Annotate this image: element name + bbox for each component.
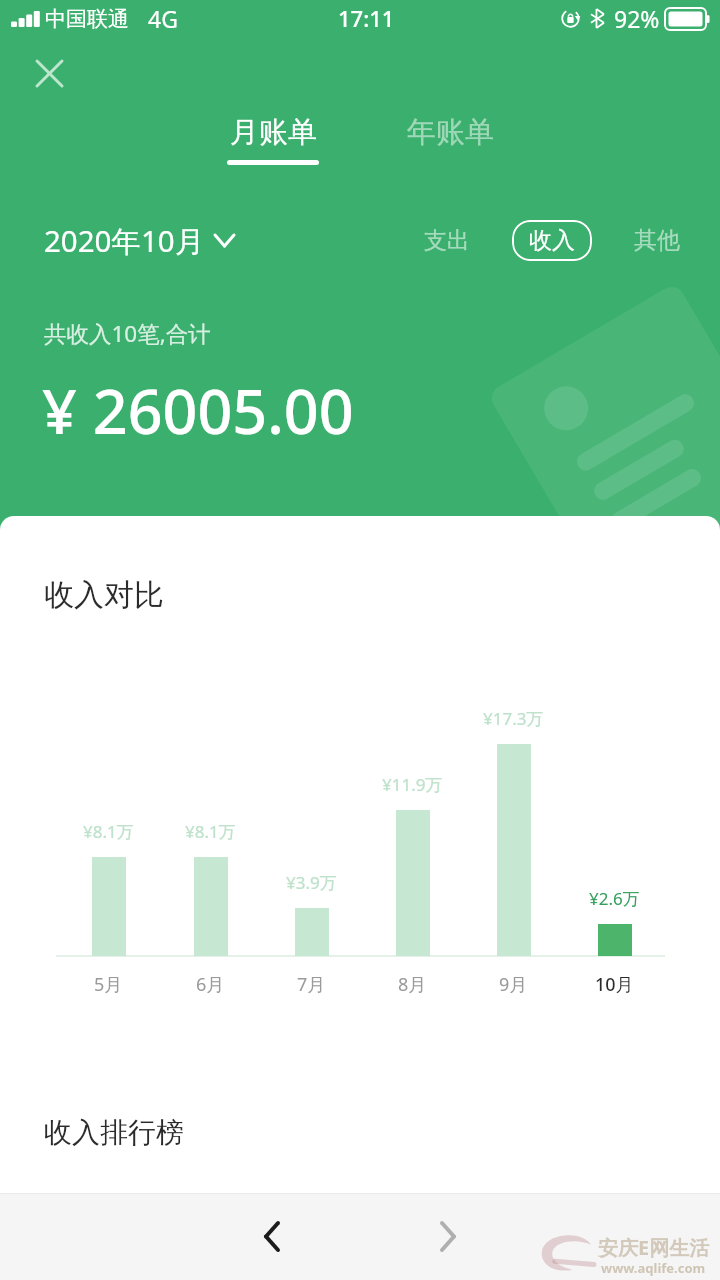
button[interactable]: Close (25, 49, 73, 97)
staticText: ¥ 26005.00 (42, 369, 354, 452)
staticText: 支出 (424, 226, 470, 255)
staticText: ¥3.9万 (286, 871, 337, 894)
staticText: ¥8.1万 (83, 820, 134, 843)
button[interactable]: 月账单 (221, 114, 325, 165)
button[interactable]: Forward (403, 1193, 493, 1280)
staticText: 9月 (499, 972, 528, 997)
staticText: 10月 (595, 972, 634, 997)
staticText: www.aqlife.com (601, 1259, 706, 1277)
staticText: 共收入10笔,合计 (44, 318, 211, 349)
staticText: 收入对比 (44, 576, 164, 614)
staticText: 安庆E网生活 (598, 1234, 710, 1261)
staticText: ¥2.6万 (589, 887, 640, 910)
staticText: ¥8.1万 (185, 820, 236, 843)
staticText: ¥17.3万 (483, 707, 544, 730)
staticText: 6月 (196, 972, 225, 997)
staticText: 7月 (297, 972, 326, 997)
staticText: 收入 (529, 226, 575, 255)
button[interactable]: 2020年10月 (44, 220, 234, 260)
staticText: 92% (614, 3, 660, 34)
staticText: 其他 (634, 226, 680, 255)
staticText: 8月 (398, 972, 427, 997)
button[interactable]: 收入 (512, 220, 592, 261)
staticText: 17:11 (338, 3, 395, 33)
staticText: 2020年10月 (44, 220, 205, 260)
staticText: 中国联通 (45, 6, 129, 32)
staticText: ¥11.9万 (382, 773, 443, 796)
staticText: 月账单 (230, 114, 317, 151)
button[interactable]: 其他 (628, 218, 686, 263)
staticText: 收入排行榜 (44, 1115, 184, 1150)
staticText: 4G (148, 3, 178, 34)
staticText: 5月 (94, 972, 123, 997)
button[interactable]: Back (227, 1193, 317, 1280)
button[interactable]: 支出 (418, 218, 476, 263)
button[interactable]: 年账单 (401, 114, 500, 151)
staticText: 年账单 (407, 114, 494, 151)
